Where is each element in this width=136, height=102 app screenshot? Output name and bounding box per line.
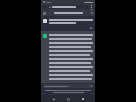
button[interactable]: Recent apps bbox=[80, 96, 86, 102]
button[interactable]: Menu bbox=[43, 12, 46, 15]
button[interactable]: Send bbox=[43, 84, 93, 88]
button[interactable] bbox=[48, 5, 84, 9]
button[interactable]: Edit message bbox=[90, 27, 92, 29]
button[interactable]: Good response bbox=[41, 31, 95, 83]
button[interactable]: Menu bbox=[41, 10, 95, 16]
button[interactable] bbox=[41, 16, 95, 27]
button[interactable]: Send bbox=[90, 85, 92, 87]
button[interactable]: New chat bbox=[91, 12, 93, 14]
button[interactable]: Back bbox=[50, 96, 56, 102]
button[interactable]: Home bbox=[65, 96, 71, 102]
button[interactable]: More options bbox=[90, 5, 93, 10]
